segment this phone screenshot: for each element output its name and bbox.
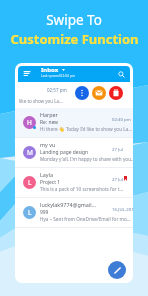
staticText: Monday y'all, I'm happy to share with yo… — [40, 156, 133, 162]
staticText: luckylak9774@gmail... — [40, 201, 96, 208]
staticText: This is a pack of 10 screenshots for t..… — [40, 186, 124, 192]
staticText: 27 Jul — [112, 176, 123, 182]
staticText: H — [27, 118, 32, 127]
button[interactable]: M — [15, 138, 133, 168]
button[interactable]: 02:57 pm — [15, 82, 133, 108]
staticText: Customize Function — [10, 30, 139, 48]
staticText: Harper — [40, 111, 58, 118]
button[interactable]: Open navigation menu — [24, 71, 30, 76]
button[interactable]: More options — [75, 86, 89, 100]
staticText: Landing page design — [40, 149, 89, 156]
button[interactable]: L — [15, 198, 133, 228]
staticText: L — [28, 178, 32, 187]
staticText: Last synced 02:54 pm — [41, 73, 76, 78]
button[interactable]: L — [15, 168, 133, 198]
staticText: 02:40 pm — [112, 116, 131, 122]
staticText: 02:57 pm — [47, 87, 67, 93]
staticText: Hya – Sent from OneDrive/Email for mo... — [40, 216, 131, 222]
button[interactable]: Delete — [109, 86, 123, 100]
staticText: my vu — [40, 141, 56, 148]
button[interactable]: Compose — [108, 261, 126, 279]
staticText: Re: new — [40, 119, 58, 126]
button[interactable]: H — [15, 108, 133, 138]
button[interactable]: Archive — [92, 86, 106, 100]
staticText: Project 1 — [40, 179, 61, 186]
staticText: L — [28, 208, 32, 217]
staticText: Inbox — [41, 66, 59, 74]
staticText: 999 — [40, 209, 49, 216]
button[interactable]: Open navigation menu — [18, 66, 130, 82]
staticText: Layla — [40, 171, 54, 178]
staticText: M — [27, 148, 33, 157]
staticText: Hi there 👋 Today I'd like to show you La… — [40, 126, 133, 132]
staticText: Swipe To — [46, 11, 102, 29]
button[interactable]: Search — [118, 71, 125, 78]
staticText: 27 Jul — [112, 146, 123, 152]
staticText: 16-JUL-2019 — [112, 206, 133, 212]
staticText: like to show you La... — [19, 98, 63, 104]
